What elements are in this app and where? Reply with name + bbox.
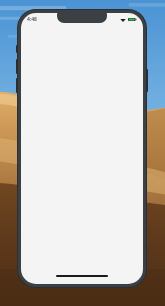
button[interactable]: Home indicator xyxy=(56,275,108,277)
staticText: 4:48 xyxy=(27,16,37,23)
